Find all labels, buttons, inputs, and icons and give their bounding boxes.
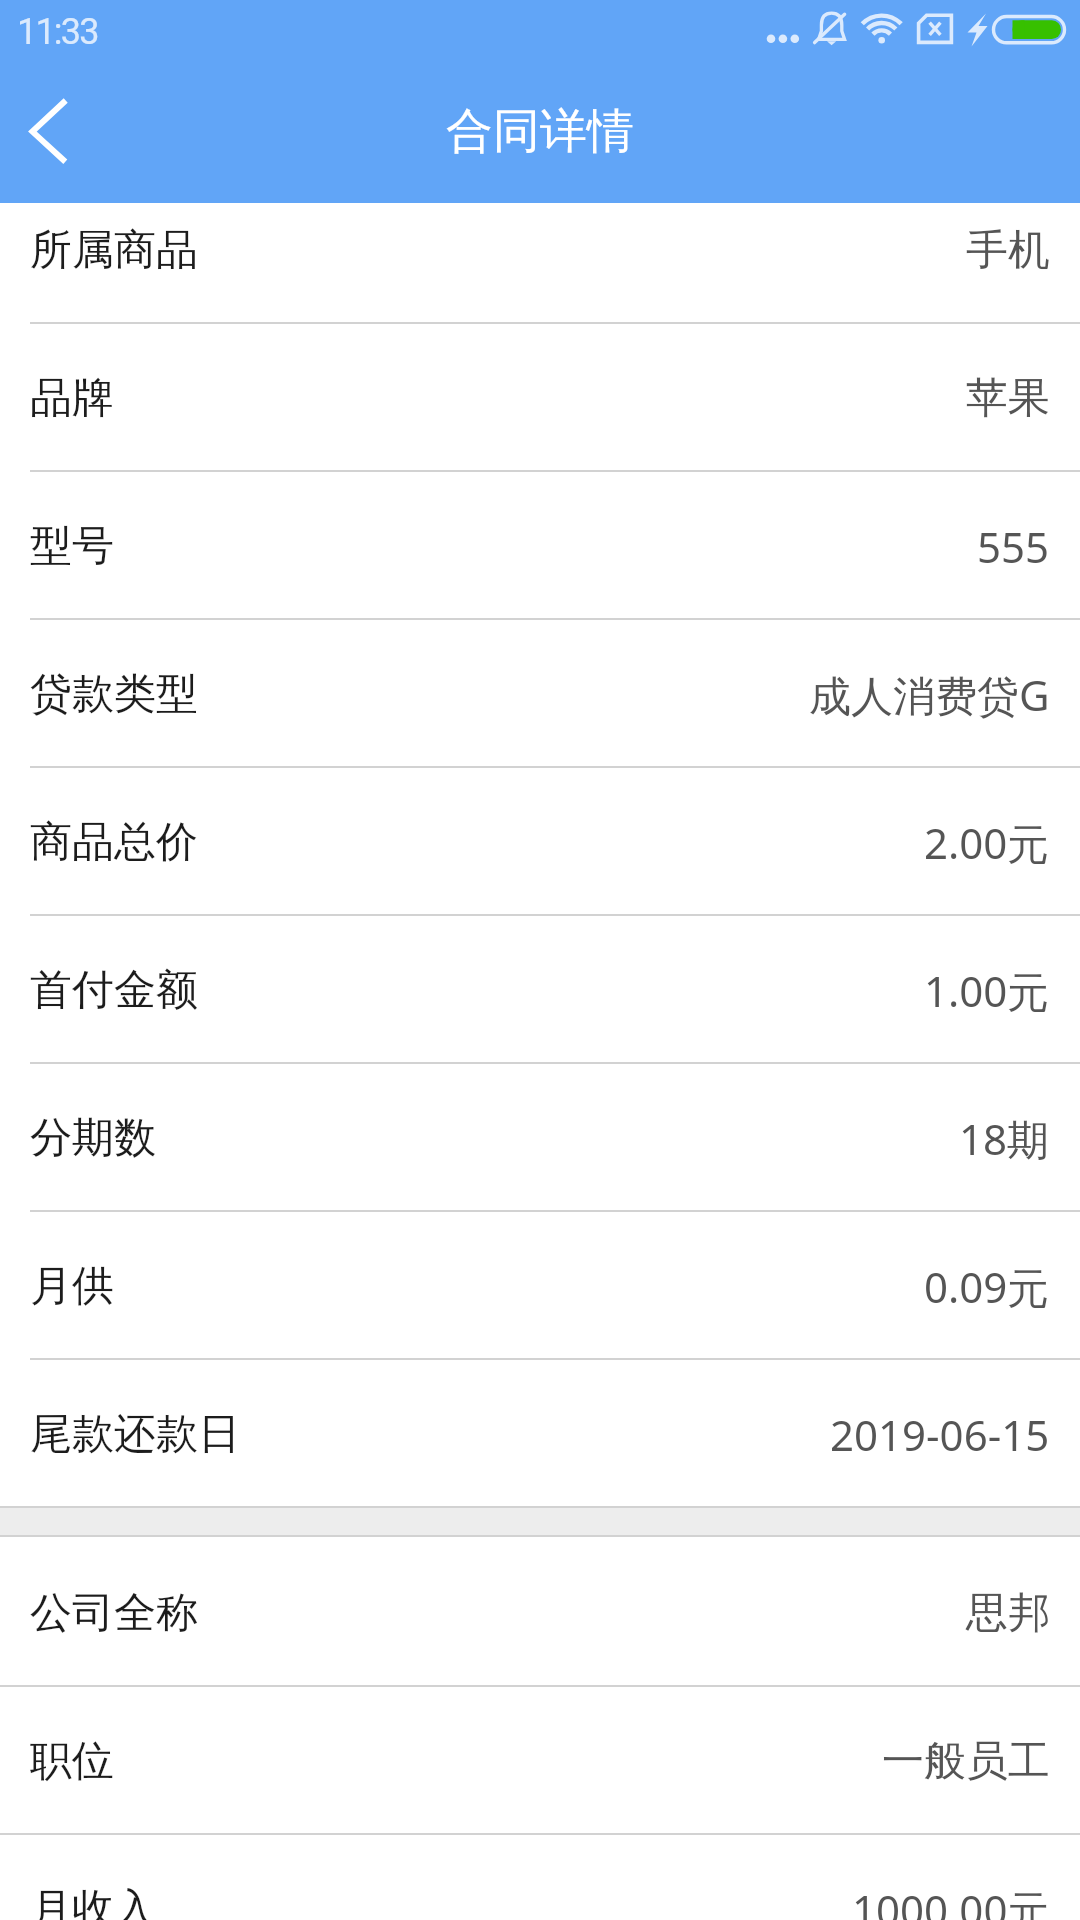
staticText: 0.09元 [924,1258,1050,1315]
button[interactable]: 月供 [0,1212,1080,1360]
staticText: 分期数 [30,1112,156,1165]
button[interactable]: 职位 [0,1687,1080,1835]
staticText: 首付金额 [30,964,198,1017]
staticText: 手机 [966,224,1050,277]
staticText: 思邦 [966,1587,1050,1640]
staticText: 2019-06-15 [830,1406,1050,1463]
button[interactable]: 型号 [0,472,1080,620]
staticText: 1000.00元 [852,1881,1050,1920]
button[interactable]: 商品总价 [0,768,1080,916]
staticText: 苹果 [966,372,1050,425]
staticText: 18期 [959,1110,1050,1167]
staticText: 贷款类型 [30,668,198,721]
staticText: 所属商品 [30,224,198,277]
button[interactable]: 公司全称 [0,1539,1080,1687]
staticText: 公司全称 [30,1587,198,1640]
button[interactable]: 分期数 [0,1064,1080,1212]
staticText: 商品总价 [30,816,198,869]
button[interactable]: Back [0,62,116,203]
button[interactable]: 月收入 [0,1835,1080,1920]
staticText: 职位 [30,1735,114,1788]
staticText: 尾款还款日 [30,1408,240,1461]
staticText: 2.00元 [924,814,1050,871]
staticText: 555 [977,518,1050,575]
staticText: 合同详情 [446,102,634,161]
staticText: 型号 [30,520,114,573]
staticText: 品牌 [30,372,114,425]
button[interactable]: 品牌 [0,324,1080,472]
staticText: 月收入 [30,1883,156,1920]
button[interactable]: 首付金额 [0,916,1080,1064]
staticText: 1.00元 [924,962,1050,1019]
button[interactable]: 尾款还款日 [0,1360,1080,1508]
staticText: 月供 [30,1260,114,1313]
button[interactable]: 贷款类型 [0,620,1080,768]
staticText: 11:33 [17,11,98,53]
staticText: 一般员工 [882,1735,1050,1788]
button[interactable]: 所属商品 [0,203,1080,324]
staticText: 成人消费贷G [809,666,1050,723]
